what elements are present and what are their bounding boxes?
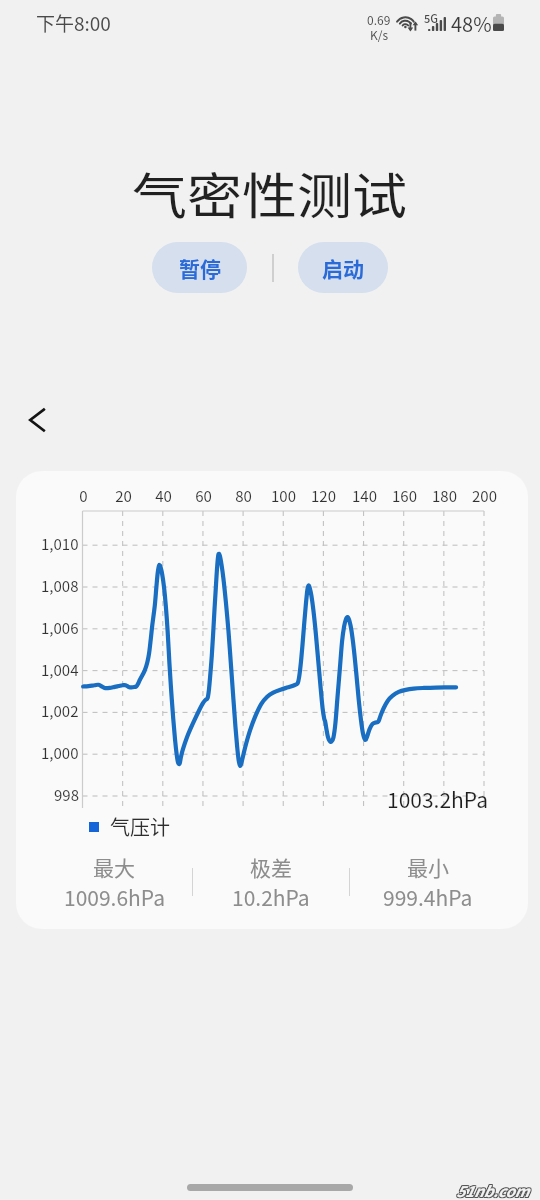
staticText: 0.69 [367, 11, 391, 28]
staticText: 120 [311, 485, 336, 507]
staticText: 51nb.com [457, 1181, 530, 1200]
staticText: 20 [115, 485, 132, 507]
staticText: 40 [155, 485, 172, 507]
staticText: 51nb.com [456, 1181, 529, 1200]
staticText: 1,000 [41, 742, 79, 764]
staticText: 180 [432, 485, 457, 507]
staticText: 51nb.com [456, 1180, 529, 1200]
staticText: 0 [79, 485, 88, 507]
staticText: 998 [54, 784, 79, 806]
staticText: 200 [472, 485, 497, 507]
staticText: 1003.2hPa [387, 784, 488, 814]
button[interactable]: Back [13, 396, 61, 444]
staticText: 1,008 [41, 575, 79, 597]
staticText: 51nb.com [455, 1181, 528, 1200]
staticText: 999.4hPa [383, 882, 473, 912]
staticText: 气压计 [110, 812, 170, 841]
staticText: 51nb.com [456, 1179, 529, 1200]
staticText: 140 [352, 485, 377, 507]
staticText: 48% [451, 9, 492, 38]
staticText: 启动 [322, 253, 364, 283]
staticText: 80 [235, 485, 252, 507]
staticText: 51nb.com [457, 1180, 530, 1200]
staticText: 最大 [93, 852, 135, 882]
staticText: 1,010 [41, 533, 79, 555]
staticText: 5G [424, 10, 438, 26]
staticText: 51nb.com [457, 1179, 530, 1200]
staticText: 60 [195, 485, 212, 507]
button[interactable]: 启动 [298, 242, 388, 293]
button[interactable]: 暂停 [152, 242, 247, 293]
staticText: 160 [392, 485, 417, 507]
staticText: 1,004 [41, 659, 79, 681]
staticText: 10.2hPa [232, 882, 310, 912]
staticText: 下午8:00 [36, 9, 111, 37]
staticText: K/s [370, 26, 389, 43]
staticText: 极差 [250, 852, 292, 882]
staticText: 1,006 [41, 617, 79, 639]
staticText: 最小 [407, 852, 449, 882]
staticText: 气密性测试 [132, 157, 408, 221]
staticText: 51nb.com [455, 1180, 528, 1200]
staticText: 1009.6hPa [64, 882, 165, 912]
staticText: 暂停 [179, 253, 221, 283]
staticText: 100 [271, 485, 296, 507]
staticText: 51nb.com [455, 1179, 528, 1200]
staticText: 1,002 [41, 700, 79, 722]
